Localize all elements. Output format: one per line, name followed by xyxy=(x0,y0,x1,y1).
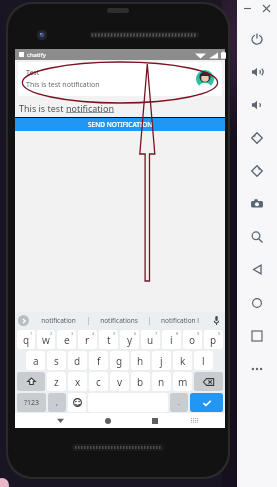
button[interactable]: m xyxy=(173,372,192,391)
staticText: , xyxy=(56,398,58,408)
button[interactable]: Home xyxy=(84,413,131,428)
button[interactable]: Enter xyxy=(190,393,223,412)
button[interactable]: Shift xyxy=(17,372,45,391)
staticText: 9 xyxy=(197,331,200,336)
staticText: s xyxy=(54,354,59,368)
button[interactable]: ?123 xyxy=(17,393,46,412)
button[interactable]: c xyxy=(89,372,108,391)
button[interactable]: j xyxy=(152,351,171,370)
staticText: d xyxy=(74,354,81,368)
staticText: n xyxy=(158,375,165,389)
staticText: w xyxy=(42,333,50,347)
button[interactable]: a xyxy=(26,351,45,370)
button[interactable]: r xyxy=(78,330,97,349)
staticText: b xyxy=(137,375,144,389)
button[interactable]: Rotate right xyxy=(237,154,277,187)
button[interactable]: Recents xyxy=(131,413,178,428)
button[interactable]: Screenshot xyxy=(237,187,277,220)
button[interactable]: notifications xyxy=(89,312,149,329)
button[interactable]: e xyxy=(57,330,76,349)
staticText: 8 xyxy=(176,331,179,336)
button[interactable]: Switch keyboard xyxy=(178,413,211,428)
button[interactable]: l xyxy=(194,351,213,370)
staticText: u xyxy=(147,333,154,347)
staticText: f xyxy=(97,354,101,368)
staticText: e xyxy=(64,333,70,347)
staticText: j xyxy=(160,354,163,368)
staticText: 6 xyxy=(134,331,137,336)
staticText: notification l xyxy=(161,316,199,325)
staticText: This is test xyxy=(19,102,66,114)
button[interactable]: u xyxy=(141,330,160,349)
button[interactable]: Minimize xyxy=(243,4,252,13)
button[interactable]: Back xyxy=(237,253,277,286)
button[interactable]: Backspace xyxy=(194,372,223,391)
button[interactable]: Rotate left xyxy=(237,121,277,154)
button[interactable]: p xyxy=(204,330,223,349)
button[interactable]: Power xyxy=(237,22,277,55)
button[interactable]: Overview xyxy=(237,319,277,352)
staticText: c xyxy=(96,375,101,389)
button[interactable]: q xyxy=(17,330,35,349)
staticText: notification xyxy=(41,316,76,325)
button[interactable]: g xyxy=(110,351,129,370)
button[interactable]: d xyxy=(68,351,87,370)
button[interactable]: Emoji xyxy=(68,393,86,412)
button[interactable]: SEND NOTIFICATION xyxy=(15,118,225,131)
button[interactable]: Close xyxy=(262,4,271,13)
staticText: y xyxy=(127,333,133,347)
button[interactable]: . xyxy=(170,393,188,412)
staticText: i xyxy=(170,333,173,347)
button[interactable]: Back xyxy=(37,413,84,428)
staticText: notification xyxy=(66,102,114,114)
button[interactable]: s xyxy=(47,351,66,370)
staticText: . xyxy=(178,398,180,408)
staticText: 7 xyxy=(155,331,158,336)
staticText: ?123 xyxy=(24,398,40,408)
button[interactable]: f xyxy=(89,351,108,370)
staticText: This is test notification xyxy=(26,80,100,90)
button[interactable]: y xyxy=(120,330,139,349)
staticText: chatify xyxy=(27,51,46,59)
button[interactable]: w xyxy=(37,330,55,349)
button[interactable]: Volume up xyxy=(237,55,277,88)
button[interactable]: Volume down xyxy=(237,88,277,121)
staticText: 4 xyxy=(92,331,95,336)
staticText: l xyxy=(202,354,205,368)
button[interactable]: More xyxy=(237,352,277,385)
button[interactable]: Home xyxy=(237,286,277,319)
button[interactable]: More suggestions xyxy=(18,315,29,326)
staticText: 3 xyxy=(71,331,74,336)
button[interactable]: notification l xyxy=(150,312,210,329)
staticText: p xyxy=(210,333,217,347)
staticText: 1 xyxy=(30,331,33,336)
staticText: v xyxy=(117,375,123,389)
staticText: a xyxy=(33,354,39,368)
button[interactable]: h xyxy=(131,351,150,370)
button[interactable]: o xyxy=(183,330,202,349)
staticText: x xyxy=(75,375,81,389)
staticText: 5 xyxy=(113,331,116,336)
button[interactable]: z xyxy=(47,372,66,391)
button[interactable]: v xyxy=(110,372,129,391)
button[interactable]: n xyxy=(152,372,171,391)
button[interactable]: t xyxy=(99,330,118,349)
staticText: k xyxy=(180,354,186,368)
other: Contact avatar xyxy=(196,70,214,88)
staticText: g xyxy=(116,354,123,368)
staticText: notifications xyxy=(100,316,138,325)
button[interactable]: Zoom xyxy=(237,220,277,253)
button[interactable]: k xyxy=(173,351,192,370)
staticText: Test xyxy=(26,68,40,78)
button[interactable]: i xyxy=(162,330,181,349)
button[interactable]: notification xyxy=(29,312,88,329)
button[interactable]: Test xyxy=(18,62,222,96)
button[interactable]: Voice input xyxy=(210,312,222,329)
staticText: SEND NOTIFICATION xyxy=(88,120,153,129)
button[interactable]: , xyxy=(48,393,66,412)
staticText: r xyxy=(85,333,90,347)
staticText: 2 xyxy=(50,331,53,336)
button[interactable]: b xyxy=(131,372,150,391)
button[interactable]: x xyxy=(68,372,87,391)
